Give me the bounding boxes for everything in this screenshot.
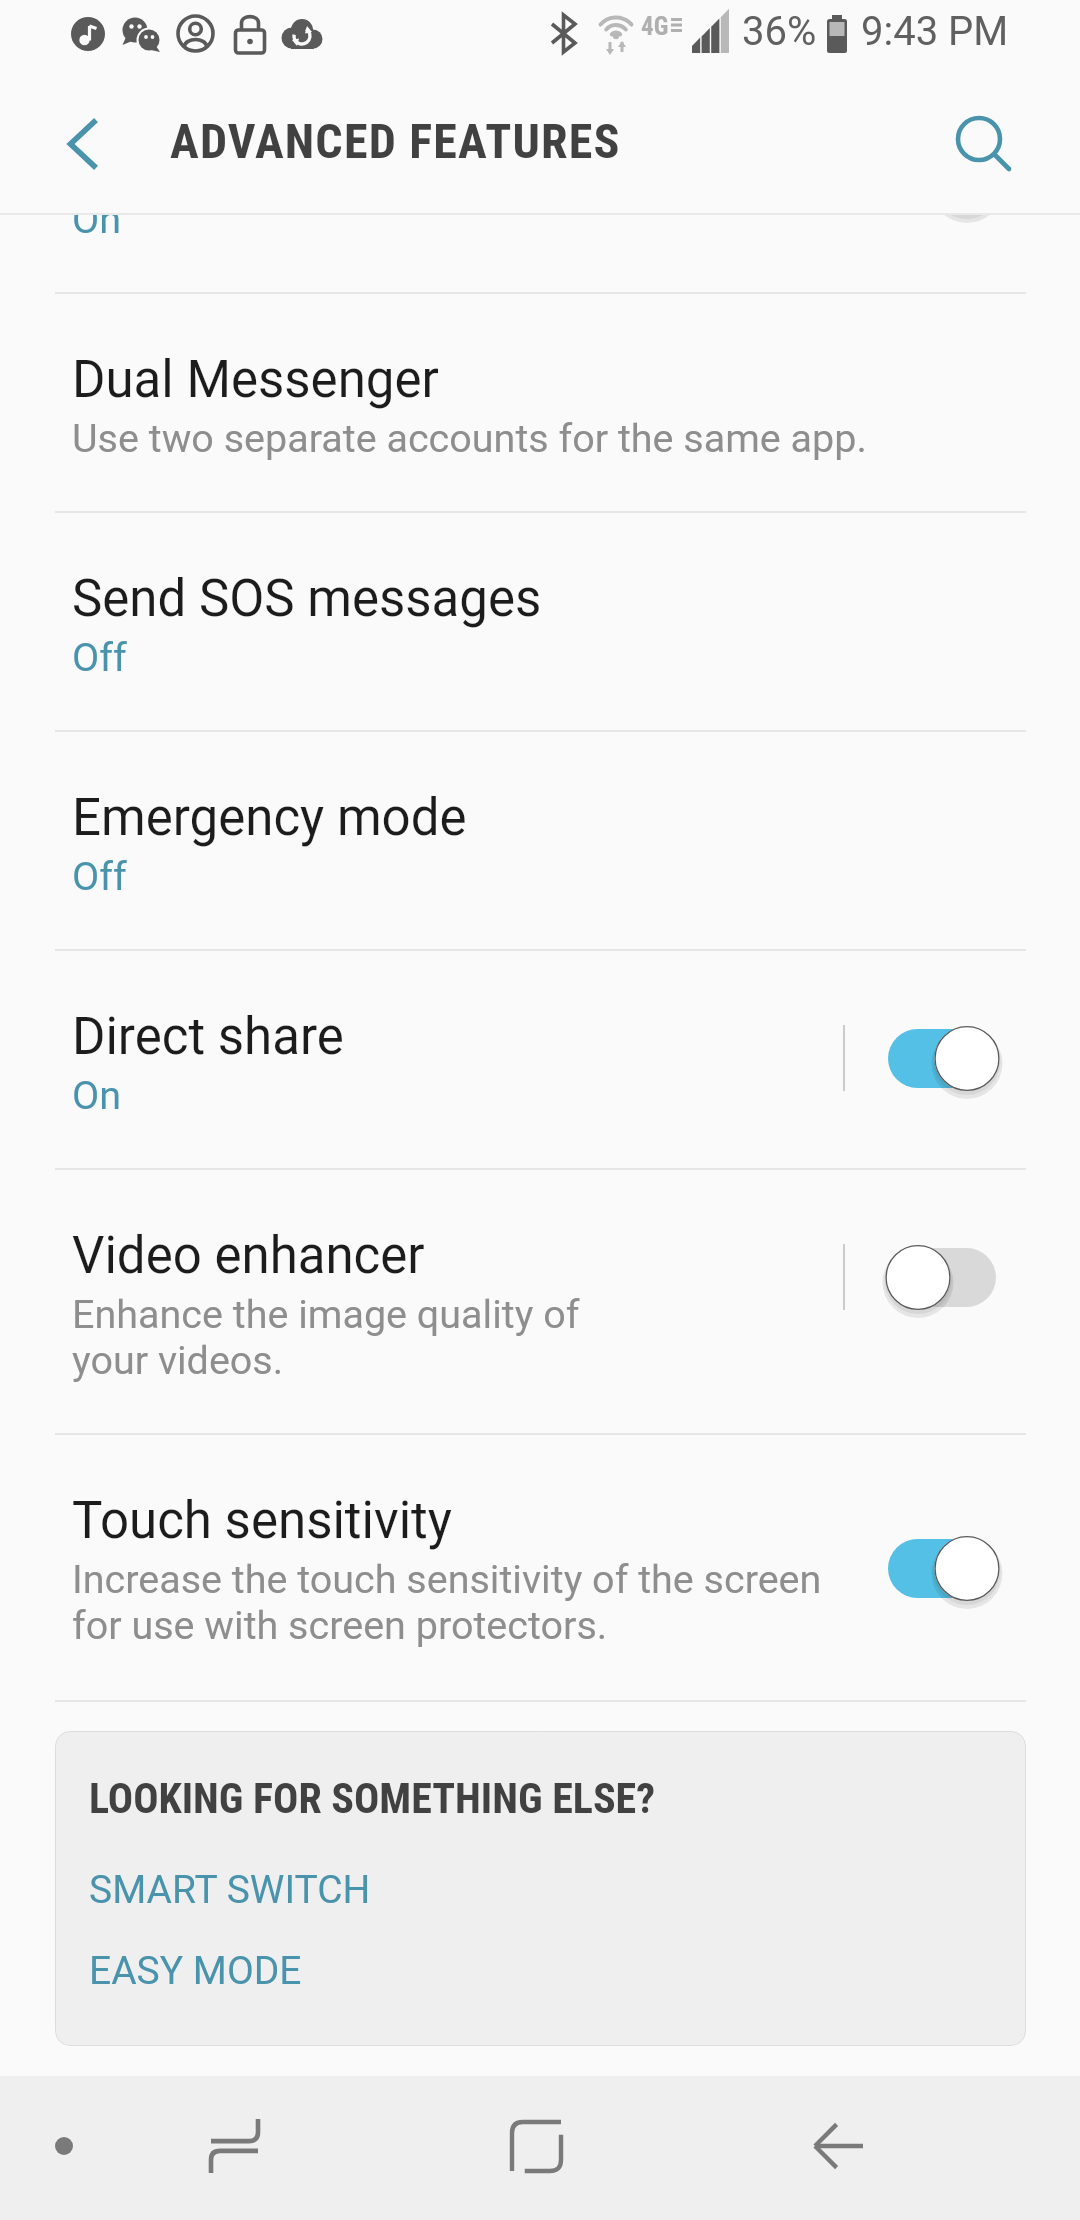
button[interactable]: Emergency mode xyxy=(0,730,1080,949)
button[interactable]: Back xyxy=(784,2091,894,2201)
button[interactable]: Direct share xyxy=(0,949,1080,1168)
button[interactable]: Video enhancer xyxy=(0,1168,1080,1433)
staticText: Increase the touch sensitivity of the sc… xyxy=(72,1556,822,1649)
staticText: 4G xyxy=(641,12,669,41)
staticText: Send SOS messages xyxy=(72,569,542,629)
staticText: 9:43 PM xyxy=(861,8,1009,55)
staticText: Off xyxy=(72,634,127,680)
staticText: Video enhancer xyxy=(72,1226,425,1286)
staticText: Direct share xyxy=(72,1007,344,1067)
staticText: ADVANCED FEATURES xyxy=(170,113,621,169)
staticText: 36% xyxy=(742,8,817,55)
button[interactable]: Home xyxy=(481,2091,591,2201)
staticText: Emergency mode xyxy=(72,788,467,848)
button[interactable]: Touch sensitivity xyxy=(0,1433,1080,1700)
staticText: Enhance the image quality of your videos… xyxy=(72,1291,580,1384)
staticText: LOOKING FOR SOMETHING ELSE? xyxy=(89,1774,656,1823)
staticText: Use two separate accounts for the same a… xyxy=(72,415,867,461)
staticText: Touch sensitivity xyxy=(72,1491,452,1551)
button[interactable]: Send SOS messages xyxy=(0,511,1080,730)
button[interactable]: Off xyxy=(885,1244,1000,1310)
staticText: Off xyxy=(72,853,127,899)
button[interactable]: On xyxy=(885,1025,1000,1091)
staticText: On xyxy=(72,215,121,242)
button[interactable]: SMART SWITCH xyxy=(55,1851,1026,1929)
button[interactable]: EASY MODE xyxy=(55,1932,1026,2010)
button[interactable]: Show keyboard xyxy=(28,2110,100,2182)
button[interactable]: Navigate up xyxy=(46,108,118,180)
staticText: SMART SWITCH xyxy=(89,1867,371,1913)
button[interactable]: On xyxy=(0,215,1080,292)
button[interactable]: On xyxy=(885,1535,1000,1601)
button[interactable]: Dual Messenger xyxy=(0,292,1080,511)
staticText: EASY MODE xyxy=(89,1948,302,1994)
staticText: On xyxy=(72,1072,121,1118)
button[interactable]: Recent apps xyxy=(179,2091,289,2201)
button[interactable]: Search xyxy=(943,103,1015,175)
staticText: Dual Messenger xyxy=(72,350,439,410)
